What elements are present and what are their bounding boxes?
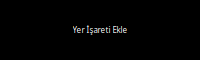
staticText: Yer İşareti Ekle <box>72 25 127 35</box>
